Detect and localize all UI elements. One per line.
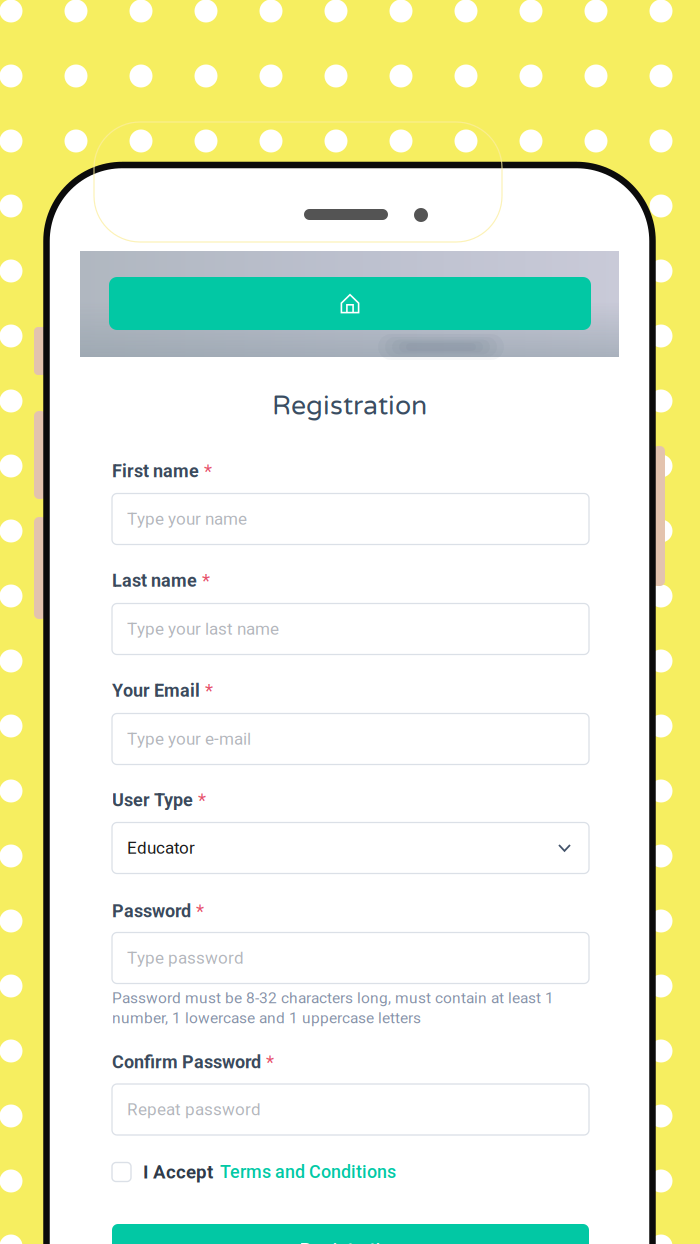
button[interactable]: Home — [109, 277, 591, 330]
staticText: First name — [112, 460, 199, 482]
button[interactable]: Educator — [112, 822, 589, 873]
staticText: Repeat password — [127, 1099, 261, 1119]
staticText: Terms and Conditions — [220, 1161, 396, 1182]
staticText: I Accept — [143, 1161, 213, 1183]
staticText: Type your last name — [127, 619, 279, 639]
staticText: * — [197, 570, 210, 591]
staticText: * — [199, 460, 212, 482]
staticText: Your Email — [112, 680, 200, 701]
button[interactable]: Type your last name — [112, 603, 589, 654]
staticText: Type your name — [127, 509, 247, 529]
staticText: Confirm Password — [112, 1051, 261, 1073]
button[interactable]: Registration — [112, 1224, 589, 1244]
staticText: * — [261, 1051, 274, 1073]
staticText: Type password — [127, 948, 244, 968]
button[interactable]: Type password — [112, 932, 589, 983]
button[interactable]: Repeat password — [112, 1084, 589, 1135]
button[interactable]: Type your e-mail — [112, 713, 589, 764]
button[interactable]: I Accept — [112, 1159, 589, 1185]
staticText: * — [191, 900, 204, 922]
staticText: Password must be 8-32 characters long, m… — [112, 989, 554, 1007]
staticText: * — [200, 680, 213, 701]
staticText: Password — [112, 900, 191, 922]
staticText: Type your e-mail — [127, 729, 251, 749]
staticText: number, 1 lowercase and 1 uppercase lett… — [112, 1009, 421, 1027]
button[interactable]: Type your name — [112, 493, 589, 544]
staticText: User Type — [112, 789, 193, 811]
staticText: Educator — [127, 838, 195, 858]
staticText: * — [193, 789, 206, 811]
staticText: Registration — [272, 390, 427, 422]
staticText: Last name — [112, 570, 197, 591]
staticText: Registration — [299, 1239, 401, 1244]
